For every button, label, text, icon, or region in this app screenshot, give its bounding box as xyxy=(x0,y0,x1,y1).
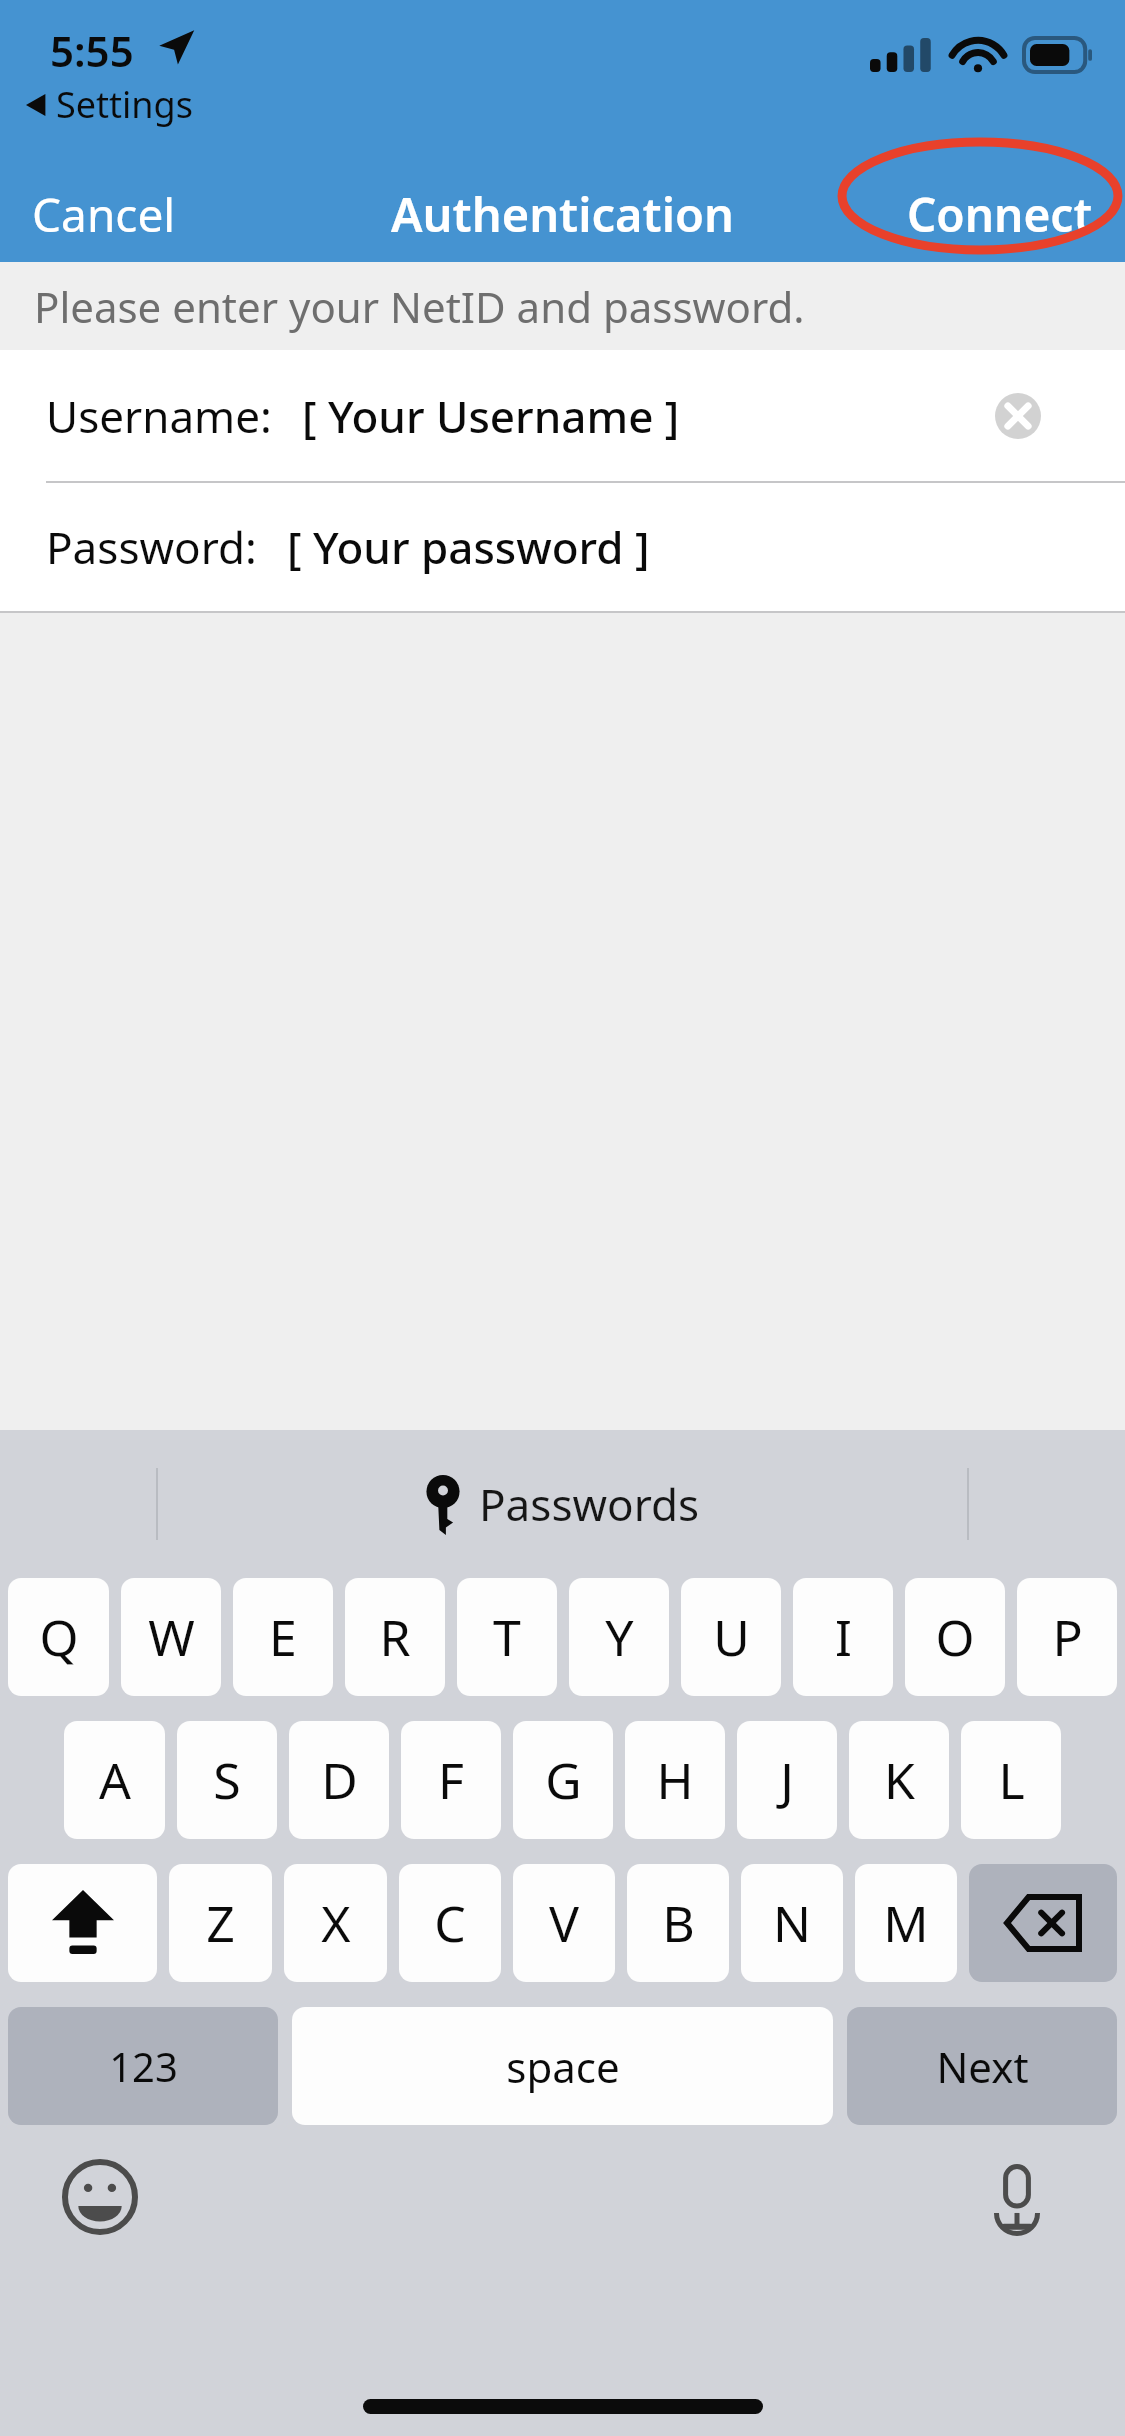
staticText: E xyxy=(269,1603,297,1671)
staticText: Cancel xyxy=(32,183,176,246)
staticText: 123 xyxy=(109,2039,178,2093)
button[interactable]: O xyxy=(905,1578,1005,1696)
staticText: F xyxy=(438,1746,464,1814)
button[interactable]: Cancel xyxy=(18,171,190,258)
button[interactable]: Emoji keyboard xyxy=(62,2159,138,2235)
button[interactable]: Connect xyxy=(893,171,1107,258)
button[interactable]: 123 xyxy=(8,2007,278,2125)
button[interactable]: I xyxy=(793,1578,893,1696)
button[interactable]: Password: xyxy=(0,483,1125,611)
button[interactable]: E xyxy=(233,1578,333,1696)
button[interactable]: D xyxy=(289,1721,389,1839)
staticText: O xyxy=(935,1603,975,1671)
button[interactable]: U xyxy=(681,1578,781,1696)
button[interactable]: Backspace xyxy=(969,1864,1117,1982)
staticText: X xyxy=(321,1889,351,1957)
staticText: I xyxy=(835,1603,852,1671)
button[interactable]: M xyxy=(855,1864,957,1982)
staticText: Connect xyxy=(907,183,1093,246)
button[interactable]: Clear text xyxy=(995,393,1041,439)
staticText: U xyxy=(713,1603,750,1671)
button[interactable]: Y xyxy=(569,1578,669,1696)
button[interactable]: Dictation xyxy=(979,2159,1055,2235)
button[interactable]: X xyxy=(284,1864,387,1982)
staticText: L xyxy=(998,1746,1025,1814)
staticText: K xyxy=(884,1746,915,1814)
button[interactable]: L xyxy=(961,1721,1061,1839)
staticText: W xyxy=(148,1603,195,1671)
staticText: H xyxy=(656,1746,694,1814)
staticText: P xyxy=(1052,1603,1083,1671)
staticText: [ Your password ] xyxy=(287,517,650,577)
button[interactable]: Q xyxy=(8,1578,109,1696)
button[interactable]: C xyxy=(399,1864,501,1982)
button[interactable]: space xyxy=(292,2007,833,2125)
button[interactable]: T xyxy=(457,1578,557,1696)
button[interactable]: Next xyxy=(847,2007,1117,2125)
staticText: Password: xyxy=(46,517,257,577)
staticText: G xyxy=(545,1746,582,1814)
staticText: C xyxy=(434,1889,466,1957)
staticText: R xyxy=(379,1603,411,1671)
button[interactable]: K xyxy=(849,1721,949,1839)
staticText: Next xyxy=(936,2038,1029,2095)
button[interactable]: Z xyxy=(169,1864,272,1982)
button[interactable]: R xyxy=(345,1578,445,1696)
staticText: Passwords xyxy=(479,1474,700,1534)
button[interactable]: J xyxy=(737,1721,837,1839)
staticText: Z xyxy=(206,1889,235,1957)
button[interactable]: A xyxy=(64,1721,165,1839)
button[interactable]: V xyxy=(513,1864,615,1982)
button[interactable]: Passwords xyxy=(403,1461,722,1547)
staticText: S xyxy=(213,1746,241,1814)
staticText: Q xyxy=(39,1603,79,1671)
button[interactable]: B xyxy=(627,1864,729,1982)
button[interactable]: Shift xyxy=(8,1864,157,1982)
button[interactable]: Settings xyxy=(22,78,197,131)
staticText: space xyxy=(506,2038,620,2095)
button[interactable]: Username: xyxy=(0,350,1125,481)
staticText: J xyxy=(780,1746,794,1814)
staticText: Y xyxy=(605,1603,634,1671)
staticText: Please enter your NetID and password. xyxy=(34,278,805,335)
staticText: Username: xyxy=(46,386,272,446)
staticText: A xyxy=(99,1746,131,1814)
button[interactable]: F xyxy=(401,1721,501,1839)
staticText: M xyxy=(883,1889,929,1957)
button[interactable]: S xyxy=(177,1721,277,1839)
button[interactable]: P xyxy=(1017,1578,1117,1696)
staticText: V xyxy=(549,1889,579,1957)
staticText: Authentication xyxy=(391,182,734,246)
staticText: Settings xyxy=(56,80,193,129)
button[interactable]: W xyxy=(121,1578,221,1696)
staticText: N xyxy=(773,1889,811,1957)
button[interactable]: N xyxy=(741,1864,843,1982)
staticText: [ Your Username ] xyxy=(302,386,680,446)
staticText: 5:55 xyxy=(50,22,134,79)
staticText: D xyxy=(321,1746,358,1814)
button[interactable]: H xyxy=(625,1721,725,1839)
button[interactable]: G xyxy=(513,1721,613,1839)
staticText: T xyxy=(493,1603,521,1671)
staticText: B xyxy=(662,1889,695,1957)
